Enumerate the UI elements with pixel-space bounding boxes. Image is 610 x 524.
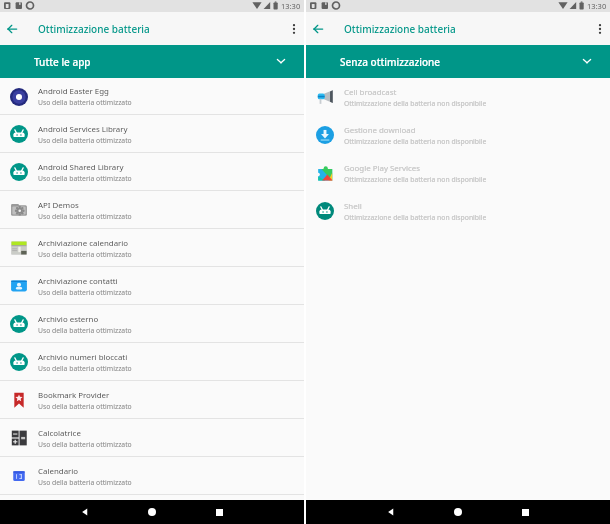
staticText: Calcolatrice	[38, 428, 81, 439]
button[interactable]: Back	[308, 19, 328, 39]
button[interactable]: Back	[74, 501, 96, 523]
staticText: Ottimizzazione della batteria non dispon…	[344, 213, 487, 222]
staticText: Android Easter Egg	[38, 86, 109, 97]
staticText: Archiviazione calendario	[38, 238, 129, 249]
staticText: Archiviazione contatti	[38, 276, 118, 287]
staticText: Uso della batteria ottimizzato	[38, 98, 132, 107]
staticText: Uso della batteria ottimizzato	[38, 440, 132, 449]
button[interactable]: Archiviazione contatti	[0, 267, 304, 305]
button[interactable]: Archivio numeri bloccati	[0, 343, 304, 381]
staticText: Tutte le app	[34, 55, 91, 69]
button[interactable]: API Demos	[0, 191, 304, 229]
staticText: Uso della batteria ottimizzato	[38, 174, 132, 183]
button[interactable]: Bookmark Provider	[0, 381, 304, 419]
staticText: Uso della batteria ottimizzato	[38, 250, 132, 259]
staticText: Gestione download	[344, 125, 416, 136]
button[interactable]: Back	[2, 19, 22, 39]
button[interactable]: Archivio esterno	[0, 305, 304, 343]
button[interactable]: Calcolatrice	[0, 419, 304, 457]
button[interactable]: Tutte le app	[0, 45, 304, 78]
staticText: Cell broadcast	[344, 87, 397, 98]
button[interactable]: Android Services Library	[0, 115, 304, 153]
button[interactable]: Home	[141, 501, 163, 523]
staticText: Uso della batteria ottimizzato	[38, 326, 132, 335]
staticText: Uso della batteria ottimizzato	[38, 364, 132, 373]
button[interactable]: More options	[284, 19, 304, 39]
button[interactable]: Senza ottimizzazione	[306, 45, 610, 78]
button[interactable]: More options	[590, 19, 610, 39]
staticText: Ottimizzazione della batteria non dispon…	[344, 99, 487, 108]
staticText: Ottimizzazione batteria	[344, 22, 456, 36]
button[interactable]: Archiviazione calendario	[0, 229, 304, 267]
button[interactable]: Calendario	[0, 457, 304, 495]
staticText: Uso della batteria ottimizzato	[38, 212, 132, 221]
button[interactable]: Home	[447, 501, 469, 523]
staticText: 13:30	[587, 1, 607, 11]
staticText: Android Services Library	[38, 124, 128, 135]
staticText: Android Shared Library	[38, 162, 124, 173]
button[interactable]: Recents	[208, 501, 230, 523]
button[interactable]: Google Play Services	[306, 154, 610, 192]
button[interactable]: Back	[380, 501, 402, 523]
staticText: Shell	[344, 201, 362, 212]
staticText: Google Play Services	[344, 163, 421, 174]
staticText: Ottimizzazione batteria	[38, 22, 150, 36]
button[interactable]: Cell broadcast	[306, 78, 610, 116]
staticText: Uso della batteria ottimizzato	[38, 402, 132, 411]
button[interactable]: Android Easter Egg	[0, 78, 304, 115]
button[interactable]: Android Shared Library	[0, 153, 304, 191]
staticText: Ottimizzazione della batteria non dispon…	[344, 137, 487, 146]
staticText: Calendario	[38, 466, 79, 477]
staticText: Senza ottimizzazione	[340, 55, 441, 69]
staticText: Archivio numeri bloccati	[38, 352, 128, 363]
staticText: Archivio esterno	[38, 314, 99, 325]
button[interactable]: Recents	[514, 501, 536, 523]
staticText: API Demos	[38, 200, 79, 211]
staticText: 13:30	[281, 1, 301, 11]
staticText: Bookmark Provider	[38, 390, 110, 401]
staticText: Ottimizzazione della batteria non dispon…	[344, 175, 487, 184]
staticText: Uso della batteria ottimizzato	[38, 288, 132, 297]
staticText: Uso della batteria ottimizzato	[38, 136, 132, 145]
staticText: Uso della batteria ottimizzato	[38, 478, 132, 487]
button[interactable]: Shell	[306, 192, 610, 230]
button[interactable]: Gestione download	[306, 116, 610, 154]
